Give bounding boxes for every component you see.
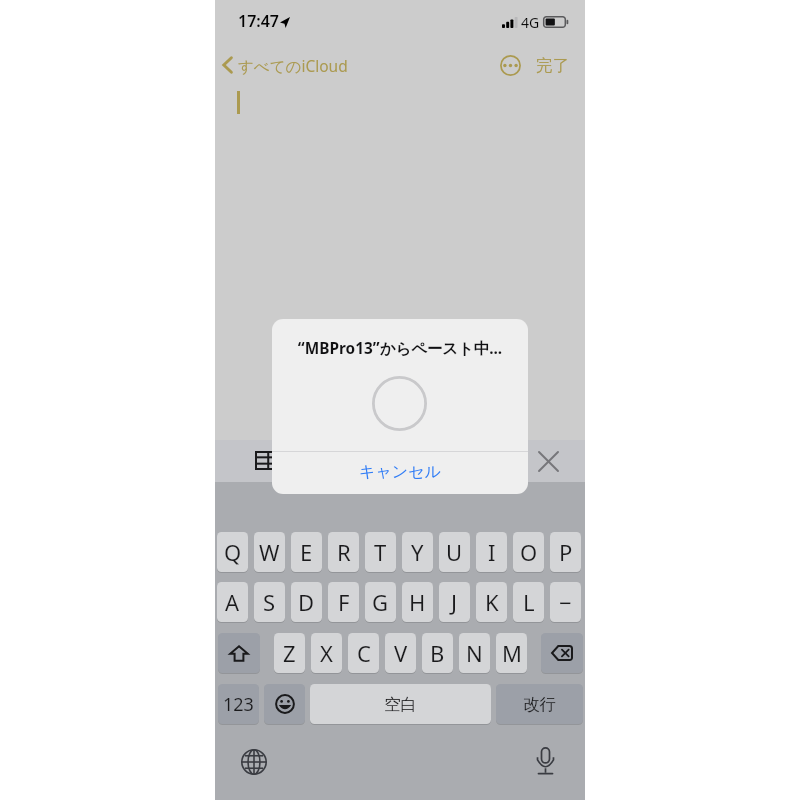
button[interactable]: N	[459, 633, 490, 673]
staticText: D	[298, 587, 315, 617]
button[interactable]: Switch keyboard	[236, 744, 272, 780]
button[interactable]: Backspace	[541, 633, 583, 673]
button[interactable]: 改行	[496, 684, 583, 724]
staticText: W	[259, 537, 280, 567]
staticText: T	[374, 537, 387, 567]
staticText: 改行	[523, 694, 556, 715]
staticText: E	[300, 537, 313, 567]
staticText: 123	[223, 692, 254, 717]
button[interactable]: U	[439, 532, 470, 572]
staticText: B	[430, 638, 445, 668]
staticText: U	[446, 537, 463, 567]
button[interactable]: 123	[218, 684, 259, 724]
staticText: M	[502, 638, 522, 668]
staticText: Y	[411, 537, 424, 567]
staticText: “MBPro13”からペースト中...	[272, 338, 528, 359]
button[interactable]: Dictation	[527, 743, 563, 779]
button[interactable]: Emoji	[264, 684, 305, 724]
staticText: K	[485, 587, 499, 617]
button[interactable]: V	[385, 633, 416, 673]
staticText: G	[372, 587, 389, 617]
button[interactable]: 空白	[310, 684, 491, 724]
button[interactable]: B	[422, 633, 453, 673]
staticText: 空白	[384, 694, 417, 715]
button[interactable]: W	[254, 532, 285, 572]
button[interactable]: Y	[402, 532, 433, 572]
button[interactable]: P	[550, 532, 581, 572]
staticText: I	[488, 537, 496, 567]
button[interactable]: I	[476, 532, 507, 572]
button[interactable]: Q	[217, 532, 248, 572]
staticText: 17:47	[238, 10, 280, 32]
staticText: X	[320, 638, 333, 668]
button[interactable]: K	[476, 582, 507, 622]
staticText: 4G	[521, 13, 540, 32]
staticText: 完了	[536, 55, 569, 76]
button[interactable]: Z	[274, 633, 305, 673]
staticText: C	[357, 638, 371, 668]
button[interactable]: Table	[245, 440, 285, 480]
staticText: Q	[224, 537, 242, 567]
button[interactable]: G	[365, 582, 396, 622]
button[interactable]: Shift	[218, 633, 260, 673]
button[interactable]: A	[217, 582, 248, 622]
button[interactable]: L	[513, 582, 544, 622]
button[interactable]: T	[365, 532, 396, 572]
button[interactable]: S	[254, 582, 285, 622]
staticText: すべてのiCloud	[238, 55, 348, 76]
staticText: H	[409, 587, 426, 617]
staticText: N	[466, 638, 483, 668]
button[interactable]: F	[328, 582, 359, 622]
button[interactable]: D	[291, 582, 322, 622]
staticText: O	[520, 537, 538, 567]
button[interactable]: −	[550, 582, 581, 622]
button[interactable]: X	[311, 633, 342, 673]
button[interactable]: 完了	[533, 44, 571, 86]
staticText: L	[523, 587, 535, 617]
staticText: R	[337, 537, 351, 567]
button[interactable]: C	[348, 633, 379, 673]
button[interactable]: H	[402, 582, 433, 622]
staticText: S	[263, 587, 276, 617]
staticText: F	[338, 587, 350, 617]
staticText: P	[559, 537, 573, 567]
staticText: J	[451, 587, 458, 617]
button[interactable]: R	[328, 532, 359, 572]
staticText: V	[394, 638, 408, 668]
staticText: Z	[283, 638, 296, 668]
button[interactable]: J	[439, 582, 470, 622]
staticText: キャンセル	[359, 462, 441, 482]
button[interactable]: More options	[493, 48, 527, 82]
button[interactable]: M	[496, 633, 527, 673]
button[interactable]: O	[513, 532, 544, 572]
button[interactable]: Close	[528, 441, 568, 481]
button[interactable]: すべてのiCloud	[222, 44, 348, 86]
button[interactable]: E	[291, 532, 322, 572]
staticText: −	[559, 587, 572, 617]
button[interactable]: キャンセル	[272, 451, 528, 492]
staticText: A	[225, 587, 240, 617]
